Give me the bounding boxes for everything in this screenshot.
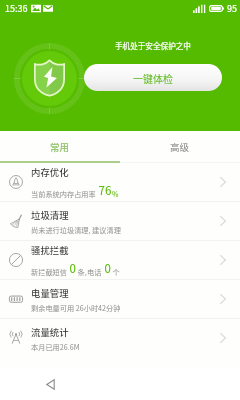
staticText: 常用 (50, 140, 70, 154)
other: Open (206, 280, 240, 318)
other: Open (206, 241, 240, 279)
staticText: 0 (67, 260, 76, 277)
button[interactable]: 内存优化 (0, 163, 240, 201)
button[interactable]: 一键体检 (84, 64, 222, 91)
staticText: 内存优化 (31, 165, 69, 179)
button[interactable]: 垃圾清理 (0, 202, 240, 240)
staticText: 剩余电量可用 26小时42分钟 (31, 303, 121, 313)
button[interactable]: 常用 (0, 131, 120, 163)
staticText: 15:36 (5, 2, 28, 15)
button[interactable]: Back (36, 368, 64, 400)
staticText: 垃圾清理 (31, 208, 69, 222)
staticText: 95 (227, 2, 237, 15)
staticText: 骚扰拦截 (31, 243, 69, 257)
button[interactable]: 流量统计 (0, 319, 240, 357)
staticText: 个 (111, 267, 120, 277)
staticText: 0 (102, 260, 111, 277)
staticText: 一键体检 (133, 71, 173, 85)
staticText: 新拦截短信 (31, 267, 67, 277)
other: Open (206, 319, 240, 357)
button[interactable]: 电量管理 (0, 280, 240, 318)
staticText: 76 (96, 182, 112, 199)
staticText: 电量管理 (31, 286, 69, 300)
other: Open (206, 163, 240, 201)
button[interactable]: 骚扰拦截 (0, 241, 240, 279)
staticText: 流量统计 (31, 325, 69, 339)
staticText: 当前系统内存占用率 (31, 189, 96, 199)
staticText: 条, (76, 267, 87, 277)
staticText: 高级 (170, 140, 190, 154)
staticText: 本月已用26.6M (31, 342, 80, 352)
staticText: % (112, 189, 119, 199)
staticText: 手机处于安全保护之中 (115, 40, 191, 51)
button[interactable]: 高级 (120, 131, 240, 163)
staticText: 电话 (87, 267, 102, 277)
staticText: 尚未进行垃圾清理, 建议清理 (31, 225, 121, 235)
other: Open (206, 202, 240, 240)
